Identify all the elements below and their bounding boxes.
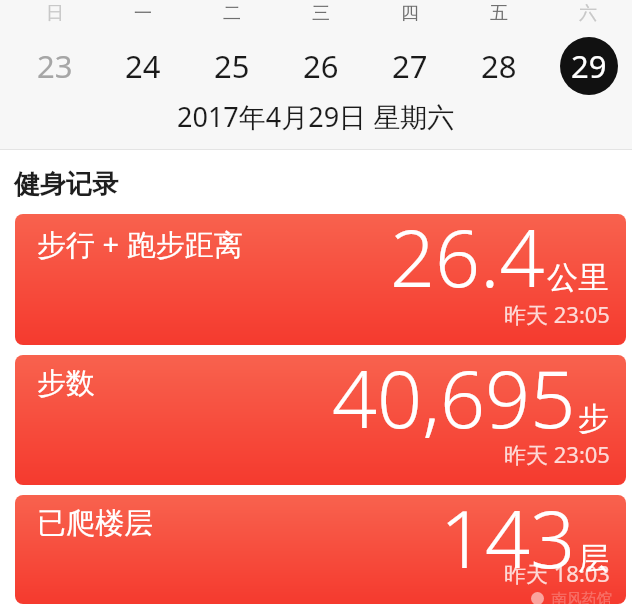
staticText: 29: [571, 45, 607, 87]
staticText: 步: [578, 399, 609, 438]
button[interactable]: 27: [392, 45, 428, 87]
staticText: 健身记录: [14, 168, 118, 201]
button[interactable]: 步行 + 跑步距离: [15, 214, 626, 345]
button[interactable]: 23: [37, 45, 73, 87]
staticText: 公里: [547, 258, 609, 297]
button[interactable]: 25: [214, 45, 250, 87]
staticText: 143: [440, 495, 576, 592]
staticText: 六: [579, 2, 597, 25]
staticText: 昨天 23:05: [504, 299, 610, 329]
staticText: 二: [223, 2, 241, 25]
staticText: 40,695: [332, 355, 576, 452]
staticText: 步行 + 跑步距离: [37, 224, 243, 264]
staticText: 南风药馆: [544, 588, 612, 604]
button[interactable]: 29: [560, 37, 618, 95]
staticText: 五: [490, 2, 508, 25]
staticText: 三: [312, 2, 330, 25]
button[interactable]: 已爬楼层: [15, 495, 626, 604]
staticText: 四: [401, 2, 419, 25]
staticText: 一: [134, 2, 152, 25]
staticText: 日: [46, 2, 64, 25]
button[interactable]: 26: [303, 45, 339, 87]
staticText: 已爬楼层: [37, 505, 153, 542]
button[interactable]: 28: [481, 45, 517, 87]
button[interactable]: 24: [125, 45, 161, 87]
staticText: 昨天 18:03: [504, 558, 610, 588]
staticText: 步数: [37, 365, 95, 402]
staticText: 层: [578, 539, 609, 578]
staticText: 2017年4月29日 星期六: [177, 98, 455, 135]
staticText: 昨天 23:05: [504, 439, 610, 469]
staticText: 26.4: [390, 214, 545, 311]
button[interactable]: 步数: [15, 355, 626, 485]
